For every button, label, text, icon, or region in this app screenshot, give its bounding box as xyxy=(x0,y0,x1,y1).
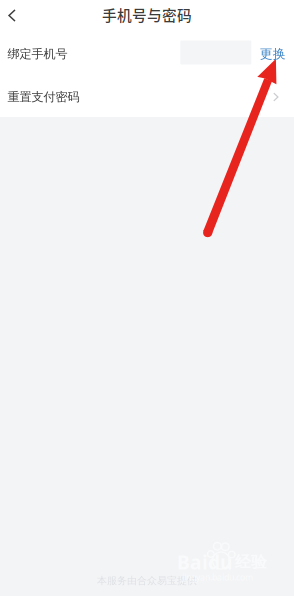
button[interactable]: 更换 xyxy=(251,31,294,77)
staticText: 手机号与密码 xyxy=(102,4,192,25)
button[interactable]: 重置支付密码 xyxy=(0,77,294,117)
staticText: 本服务由合众易宝提供 xyxy=(97,574,197,587)
staticText: 更换 xyxy=(260,46,286,62)
staticText: 重置支付密码 xyxy=(7,89,79,105)
staticText: 绑定手机号 xyxy=(7,46,67,62)
button[interactable]: 返回 xyxy=(0,0,24,31)
